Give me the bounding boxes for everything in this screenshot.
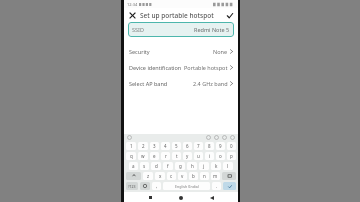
button[interactable]: t xyxy=(172,152,181,160)
button[interactable]: p xyxy=(227,152,236,160)
button[interactable]: r xyxy=(161,152,170,160)
staticText: Security xyxy=(129,48,150,55)
staticText: u xyxy=(197,153,200,159)
button[interactable]: 4 xyxy=(161,142,170,150)
button[interactable]: Security xyxy=(124,43,238,59)
staticText: ?123 xyxy=(128,184,136,189)
staticText: Portable hotspot xyxy=(184,64,228,71)
button[interactable]: 3 xyxy=(150,142,159,150)
button[interactable]: f xyxy=(163,162,173,170)
staticText: w xyxy=(141,153,145,159)
staticText: a xyxy=(132,163,135,169)
button[interactable]: Select AP band xyxy=(124,75,238,91)
button[interactable]: Shift xyxy=(126,172,141,180)
staticText: x xyxy=(159,173,162,179)
staticText: n xyxy=(203,173,206,179)
button[interactable]: n xyxy=(200,172,209,180)
button[interactable]: v xyxy=(178,172,187,180)
staticText: k xyxy=(215,163,218,169)
staticText: 3 xyxy=(153,143,156,149)
button[interactable]: s xyxy=(140,162,149,170)
staticText: 0 xyxy=(230,143,233,149)
staticText: 8 xyxy=(208,143,211,149)
button[interactable]: x xyxy=(155,172,165,180)
staticText: r xyxy=(165,153,167,159)
button[interactable]: Voice input xyxy=(214,135,219,140)
button[interactable]: Clipboard xyxy=(127,135,132,140)
button[interactable]: 2 xyxy=(138,142,148,150)
staticText: m xyxy=(213,173,218,179)
button[interactable]: 8 xyxy=(205,142,214,150)
staticText: Device identification xyxy=(129,64,182,71)
staticText: p xyxy=(230,153,233,159)
button[interactable]: Sticker xyxy=(230,135,235,140)
button[interactable]: Backspace xyxy=(222,172,236,180)
button[interactable]: 0 xyxy=(227,142,236,150)
staticText: , xyxy=(156,183,158,189)
button[interactable]: SSID xyxy=(128,22,234,37)
staticText: z xyxy=(147,173,150,179)
button[interactable]: Device identification xyxy=(124,59,238,75)
button[interactable]: 6 xyxy=(183,142,192,150)
button[interactable]: o xyxy=(216,152,225,160)
button[interactable]: b xyxy=(189,172,198,180)
button[interactable]: i xyxy=(205,152,214,160)
button[interactable]: g xyxy=(175,162,185,170)
staticText: h xyxy=(191,163,194,169)
button[interactable]: z xyxy=(143,172,153,180)
button[interactable]: . xyxy=(212,182,221,190)
button[interactable]: j xyxy=(199,162,209,170)
staticText: o xyxy=(219,153,222,159)
staticText: None xyxy=(213,48,228,55)
staticText: e xyxy=(153,153,156,159)
staticText: 2.4 GHz band xyxy=(193,80,228,87)
staticText: i xyxy=(209,153,211,159)
staticText: t xyxy=(176,153,178,159)
staticText: . xyxy=(216,183,218,189)
button[interactable]: m xyxy=(211,172,220,180)
staticText: 12:34 xyxy=(127,2,138,7)
button[interactable]: Confirm xyxy=(225,9,234,21)
button[interactable]: Emoji xyxy=(140,182,150,190)
button[interactable]: Settings xyxy=(206,135,211,140)
button[interactable]: 1 xyxy=(126,142,136,150)
button[interactable]: Enter xyxy=(223,182,236,190)
button[interactable]: c xyxy=(167,172,176,180)
staticText: l xyxy=(227,163,229,169)
button[interactable]: q xyxy=(126,152,136,160)
staticText: g xyxy=(179,163,182,169)
button[interactable]: y xyxy=(183,152,192,160)
button[interactable]: Back xyxy=(207,193,217,202)
staticText: 4 xyxy=(164,143,167,149)
button[interactable]: Recents xyxy=(145,193,155,202)
button[interactable]: Home xyxy=(176,193,186,202)
button[interactable]: w xyxy=(138,152,148,160)
button[interactable]: e xyxy=(150,152,159,160)
staticText: c xyxy=(170,173,173,179)
staticText: 6 xyxy=(186,143,189,149)
button[interactable]: u xyxy=(194,152,203,160)
button[interactable]: k xyxy=(211,162,221,170)
button[interactable]: , xyxy=(152,182,161,190)
button[interactable]: a xyxy=(129,162,138,170)
button[interactable]: l xyxy=(223,162,233,170)
staticText: Redmi Note 5 xyxy=(194,26,230,33)
staticText: 5 xyxy=(175,143,178,149)
button[interactable]: 9 xyxy=(216,142,225,150)
button[interactable]: d xyxy=(151,162,161,170)
button[interactable]: English (India) xyxy=(163,182,210,190)
staticText: v xyxy=(181,173,184,179)
button[interactable]: Symbols xyxy=(126,182,138,190)
staticText: d xyxy=(155,163,158,169)
button[interactable]: 7 xyxy=(194,142,203,150)
button[interactable]: Translate xyxy=(222,135,227,140)
staticText: j xyxy=(203,163,205,169)
button[interactable]: 5 xyxy=(172,142,181,150)
staticText: s xyxy=(143,163,146,169)
button[interactable]: Close xyxy=(128,9,137,21)
button[interactable]: h xyxy=(187,162,197,170)
staticText: q xyxy=(130,153,133,159)
staticText: y xyxy=(186,153,189,159)
staticText: Set up portable hotspot xyxy=(140,11,214,20)
staticText: 7 xyxy=(197,143,200,149)
